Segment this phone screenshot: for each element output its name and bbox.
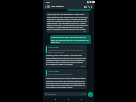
button[interactable]: Video call (84, 5, 87, 8)
button[interactable]: Message (44, 92, 87, 96)
button[interactable]: Voice message (88, 92, 93, 97)
staticText: 09:52 (81, 65, 86, 67)
staticText: Alex Morgan (48, 46, 59, 49)
staticText: Let us move the call to three (48, 73, 73, 76)
button[interactable]: Alex Morgan (45, 69, 87, 89)
staticText: 9:41 (46, 1, 51, 4)
staticText: Alex Morgan (48, 70, 59, 73)
staticText: Could you also take a look at the second… (48, 49, 85, 53)
staticText: Sounds good to me. Let us keep the same … (46, 77, 86, 88)
button[interactable]: Back (44, 5, 47, 8)
staticText: Message (48, 93, 56, 96)
button[interactable]: Alex Morgan (45, 45, 87, 68)
button[interactable]: That is fine by me, I will send over the… (50, 35, 91, 44)
staticText: 09:41 (83, 30, 88, 32)
button[interactable]: More options (90, 5, 93, 8)
button[interactable]: Hey, sorry for the late reply. I was goi… (46, 12, 89, 33)
staticText: Hey, sorry for the late reply. I was goi… (47, 13, 88, 30)
staticText: Thanks, that really helps. I will add th… (46, 54, 86, 65)
staticText: That is fine by me, I will send over the… (51, 36, 90, 43)
staticText: Alex Morgan (51, 5, 64, 8)
button[interactable]: Voice call (87, 5, 90, 8)
